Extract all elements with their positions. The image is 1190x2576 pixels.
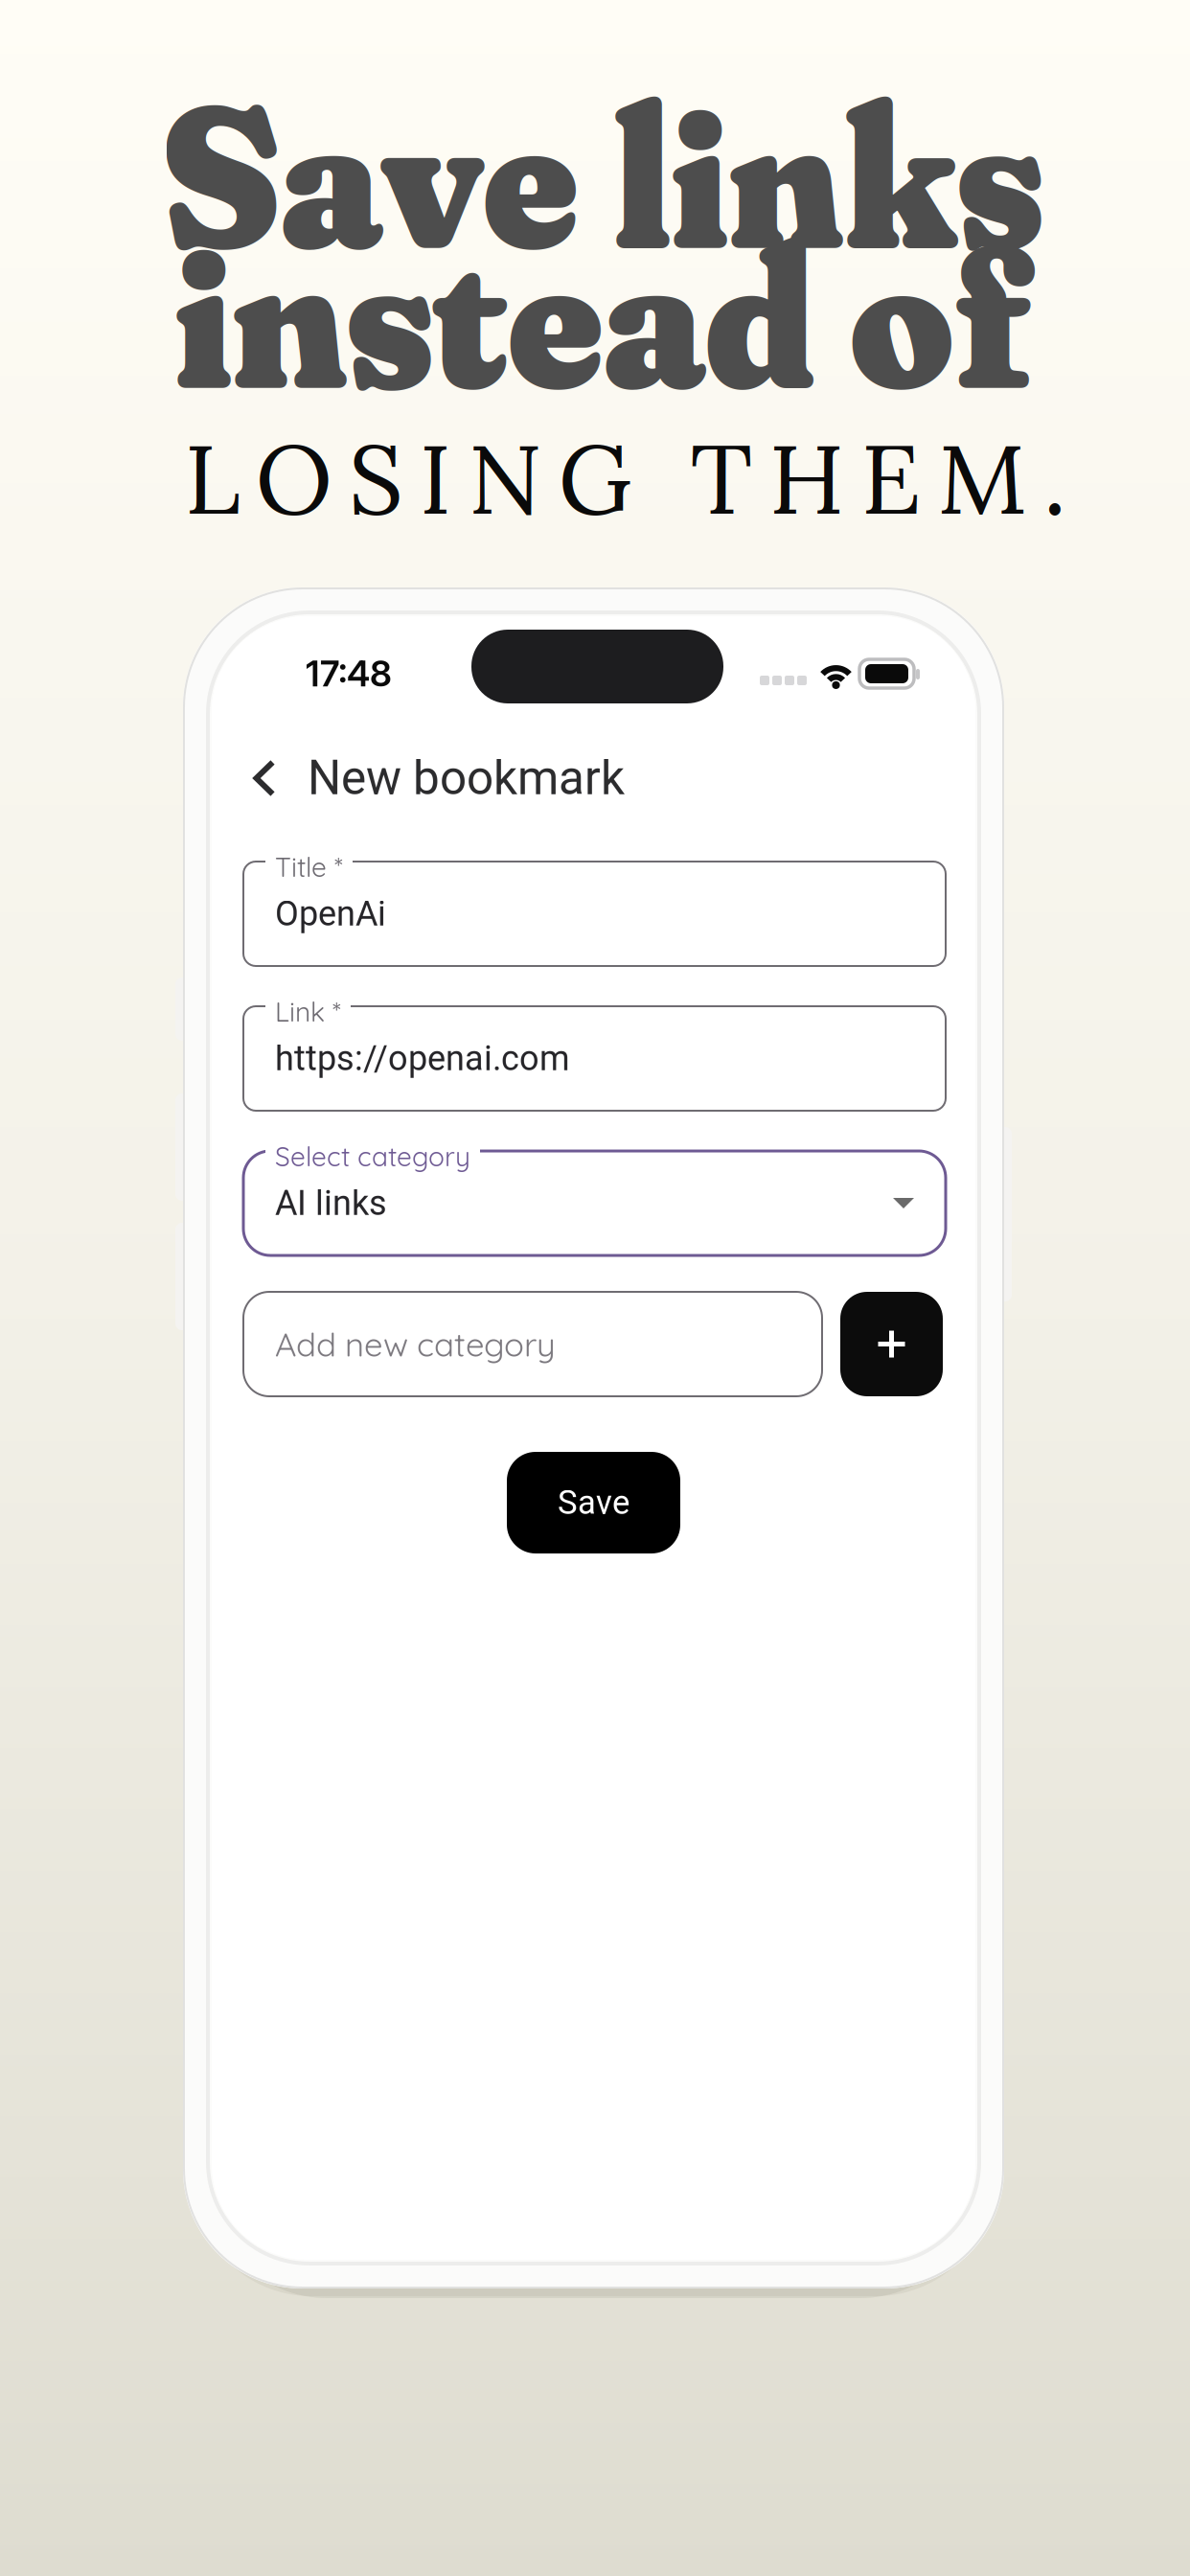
staticText: Add new category: [275, 1323, 556, 1365]
staticText: Save links: [161, 52, 1044, 299]
staticText: instead of: [174, 192, 1031, 439]
button[interactable]: Back: [221, 735, 308, 821]
staticText: New bookmark: [308, 750, 625, 806]
staticText: Title *: [275, 850, 343, 884]
staticText: AI links: [275, 1183, 387, 1223]
button[interactable]: Save: [507, 1452, 680, 1553]
staticText: LOSING THEM.: [184, 416, 1067, 540]
staticText: OpenAi: [275, 894, 386, 934]
button[interactable]: Add new category: [243, 1292, 822, 1396]
staticText: Save: [558, 1483, 629, 1522]
button[interactable]: Add category: [840, 1292, 943, 1396]
staticText: Select category: [275, 1139, 470, 1173]
staticText: Link *: [275, 995, 341, 1028]
staticText: https://openai.com: [275, 1038, 570, 1079]
staticText: 17:48: [306, 652, 392, 695]
